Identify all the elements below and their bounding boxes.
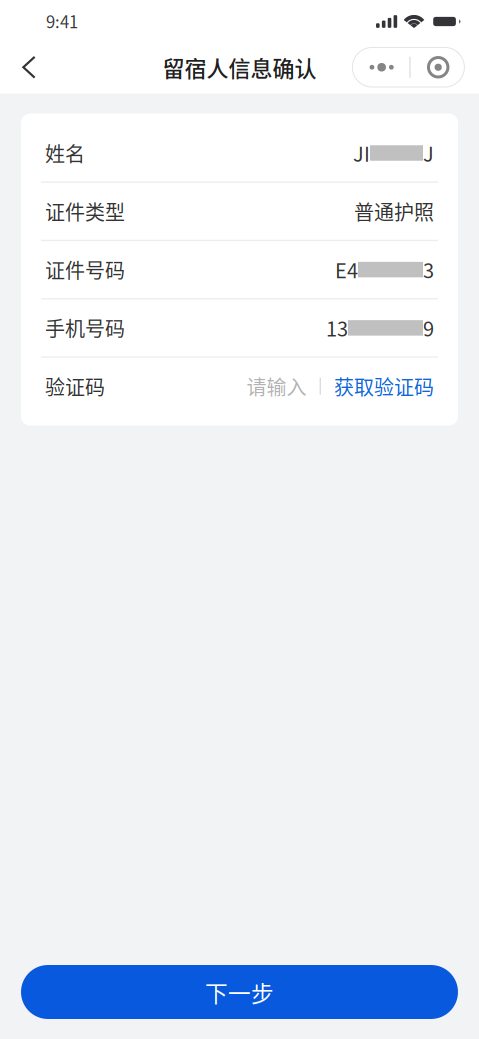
staticText: 请输入: [247, 372, 307, 401]
button[interactable]: 下一步: [21, 965, 458, 1019]
staticText: J: [423, 138, 434, 167]
button[interactable]: 返回: [7, 41, 51, 93]
staticText: 3: [423, 255, 434, 284]
staticText: 留宿人信息确认: [162, 51, 316, 83]
staticText: 证件类型: [45, 197, 125, 226]
staticText: 9: [423, 313, 434, 342]
staticText: JI: [353, 138, 370, 167]
staticText: 验证码: [45, 372, 105, 401]
staticText: 下一步: [205, 976, 274, 1008]
staticText: 13: [326, 313, 348, 342]
staticText: 手机号码: [45, 313, 125, 342]
staticText: 获取验证码: [334, 372, 434, 401]
button[interactable]: 更多: [352, 47, 464, 87]
staticText: E4: [335, 255, 358, 284]
staticText: 9:41: [46, 9, 78, 33]
staticText: 普通护照: [354, 197, 434, 226]
staticText: 姓名: [45, 138, 85, 167]
staticText: 证件号码: [45, 255, 125, 284]
button[interactable]: 获取验证码: [334, 372, 434, 401]
